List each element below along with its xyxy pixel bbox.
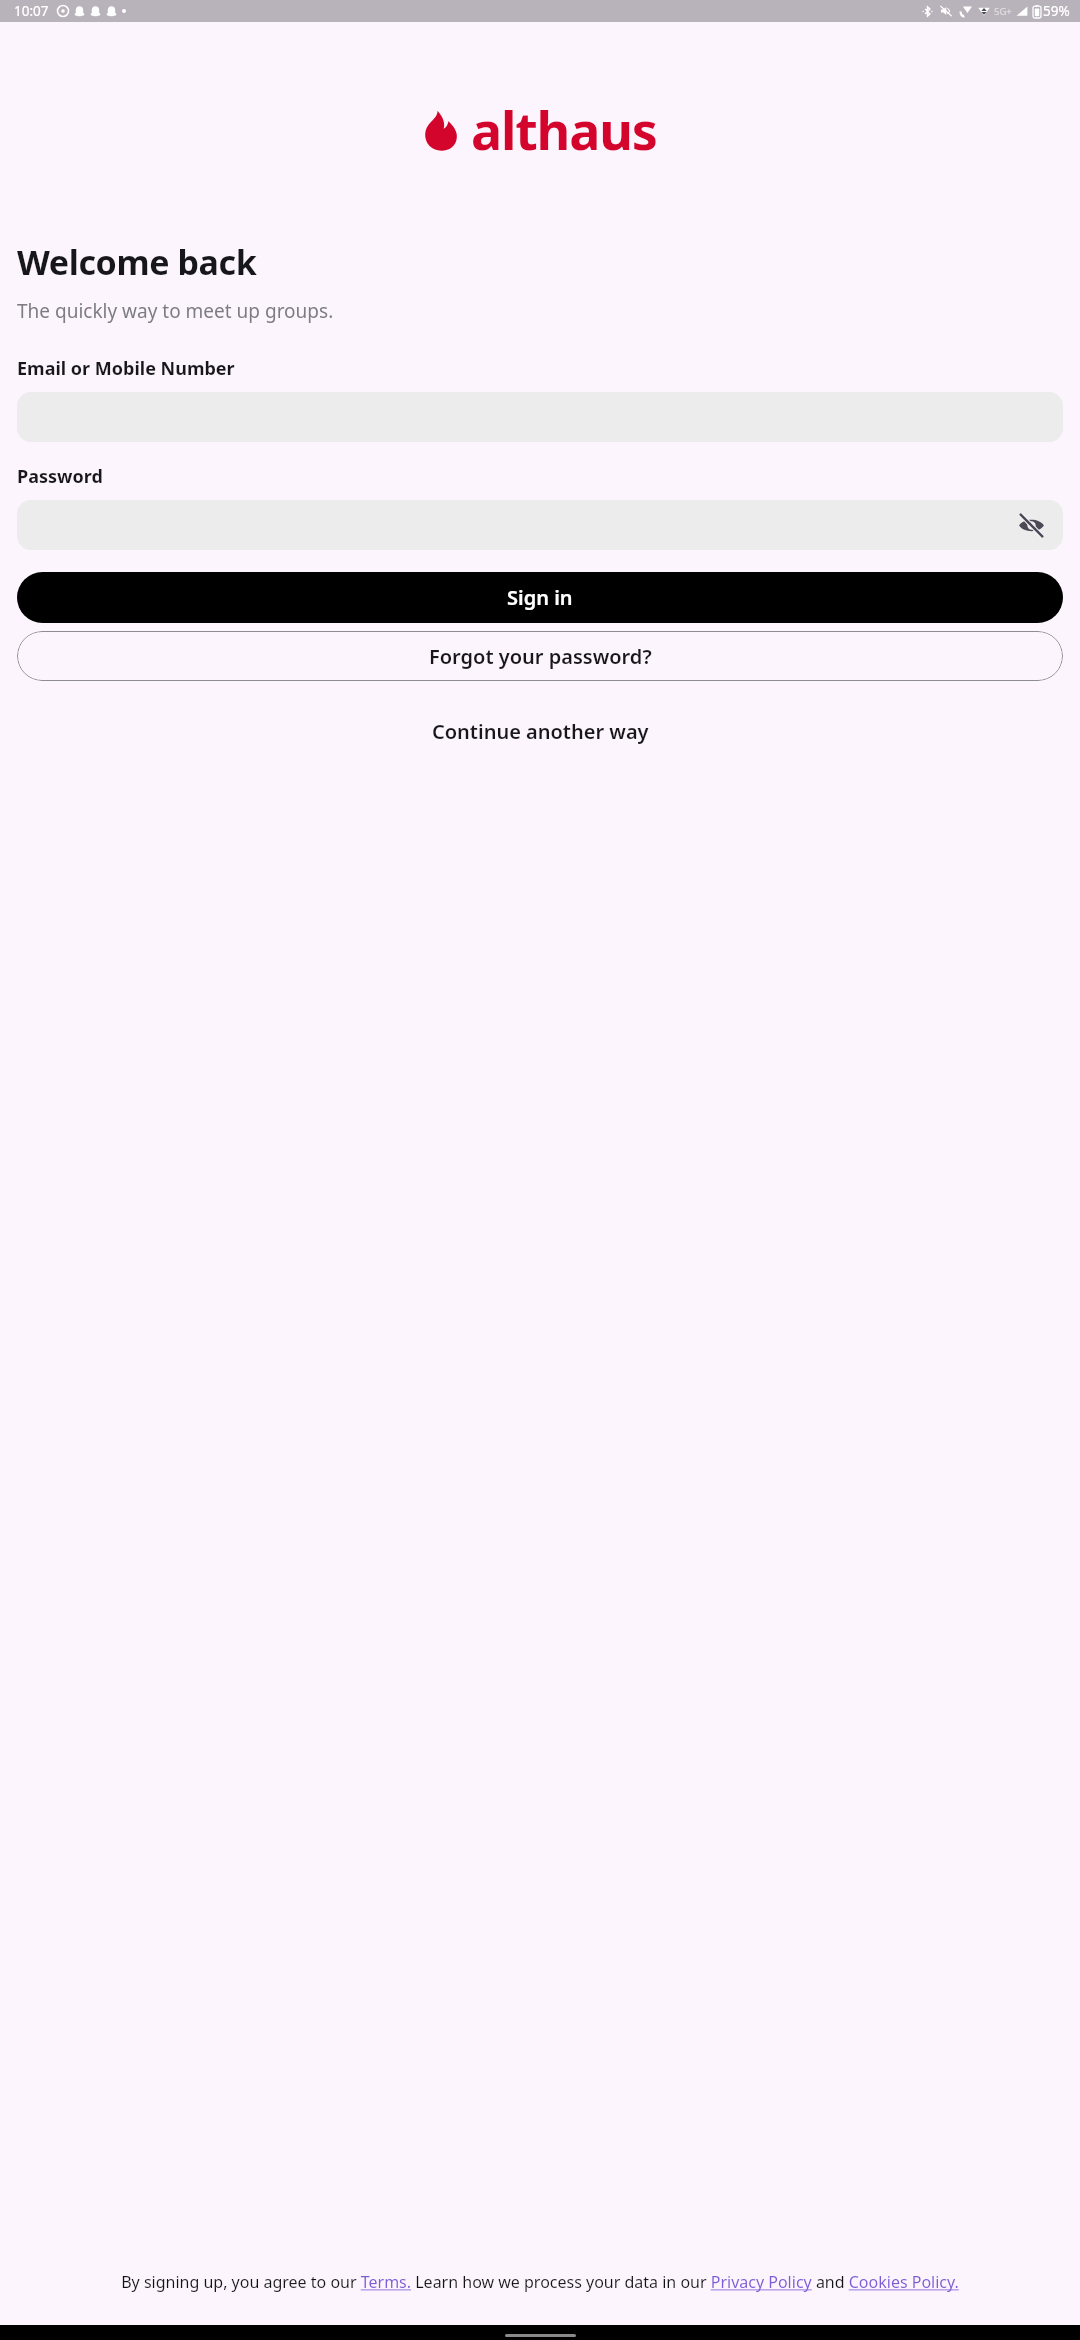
staticText: Welcome back bbox=[17, 239, 257, 285]
staticText: 59% bbox=[1043, 2, 1070, 20]
button[interactable]: Show password bbox=[1009, 503, 1053, 547]
button[interactable]: Continue another way bbox=[422, 711, 659, 752]
button[interactable]: Forgot your password? bbox=[17, 631, 1063, 681]
button[interactable]: Sign in bbox=[17, 572, 1063, 623]
staticText: The quickly way to meet up groups. bbox=[17, 298, 334, 324]
staticText: Sign in bbox=[507, 584, 573, 611]
staticText: 5G+ bbox=[994, 5, 1012, 18]
staticText: althaus bbox=[471, 94, 657, 165]
staticText: By signing up, you agree to our Terms. L… bbox=[33, 2271, 1047, 2293]
staticText: Continue another way bbox=[432, 718, 649, 745]
staticText: 10:07 bbox=[14, 2, 49, 20]
staticText: Password bbox=[17, 464, 103, 489]
staticText: Email or Mobile Number bbox=[17, 356, 235, 381]
staticText: Forgot your password? bbox=[429, 643, 652, 670]
